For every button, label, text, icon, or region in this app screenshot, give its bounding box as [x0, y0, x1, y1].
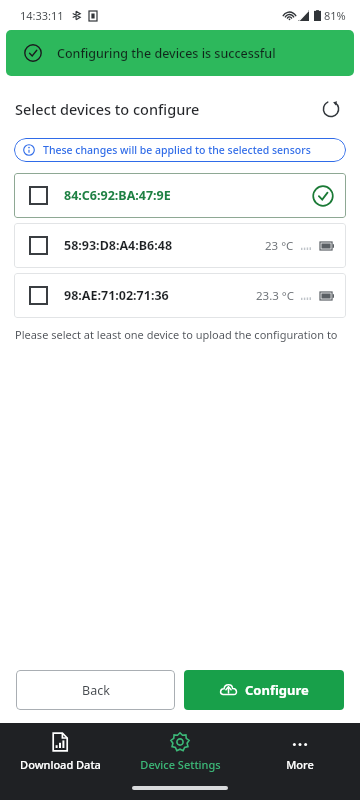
button[interactable]: Back [16, 670, 175, 710]
button[interactable]: Select 98:AE:71:02:71:36 [14, 273, 346, 318]
button[interactable]: Select 98:AE:71:02:71:36 [29, 286, 48, 305]
staticText: 14:33:11 [20, 8, 64, 23]
staticText: These changes will be applied to the sel… [43, 143, 311, 157]
staticText: Select devices to configure [15, 99, 200, 119]
staticText: 23.3 °C [256, 288, 294, 304]
button[interactable]: Download Data [0, 723, 120, 781]
staticText: Back [82, 682, 110, 699]
staticText: Configure [245, 681, 309, 699]
staticText: 98:AE:71:02:71:36 [64, 287, 169, 304]
staticText: Please select at least one device to upl… [15, 327, 338, 342]
button[interactable]: Refresh [316, 94, 346, 124]
staticText: 58:93:D8:A4:B6:48 [64, 237, 173, 254]
button[interactable]: Configure [184, 670, 344, 710]
staticText: 84:C6:92:BA:47:9E [64, 187, 171, 204]
staticText: Configuring the devices is successful [57, 45, 276, 62]
button[interactable]: More [240, 723, 360, 781]
button[interactable]: Select 58:93:D8:A4:B6:48 [14, 223, 346, 268]
button[interactable]: Device Settings [120, 723, 240, 781]
staticText: Download Data [20, 757, 101, 772]
staticText: More [286, 757, 314, 772]
button[interactable]: Select 84:C6:92:BA:47:9E [14, 173, 346, 218]
staticText: 23 °C [265, 238, 294, 254]
staticText: 81% [324, 8, 346, 23]
button[interactable]: Select 84:C6:92:BA:47:9E [29, 186, 48, 205]
staticText: Device Settings [140, 757, 221, 772]
button[interactable]: Select 58:93:D8:A4:B6:48 [29, 236, 48, 255]
